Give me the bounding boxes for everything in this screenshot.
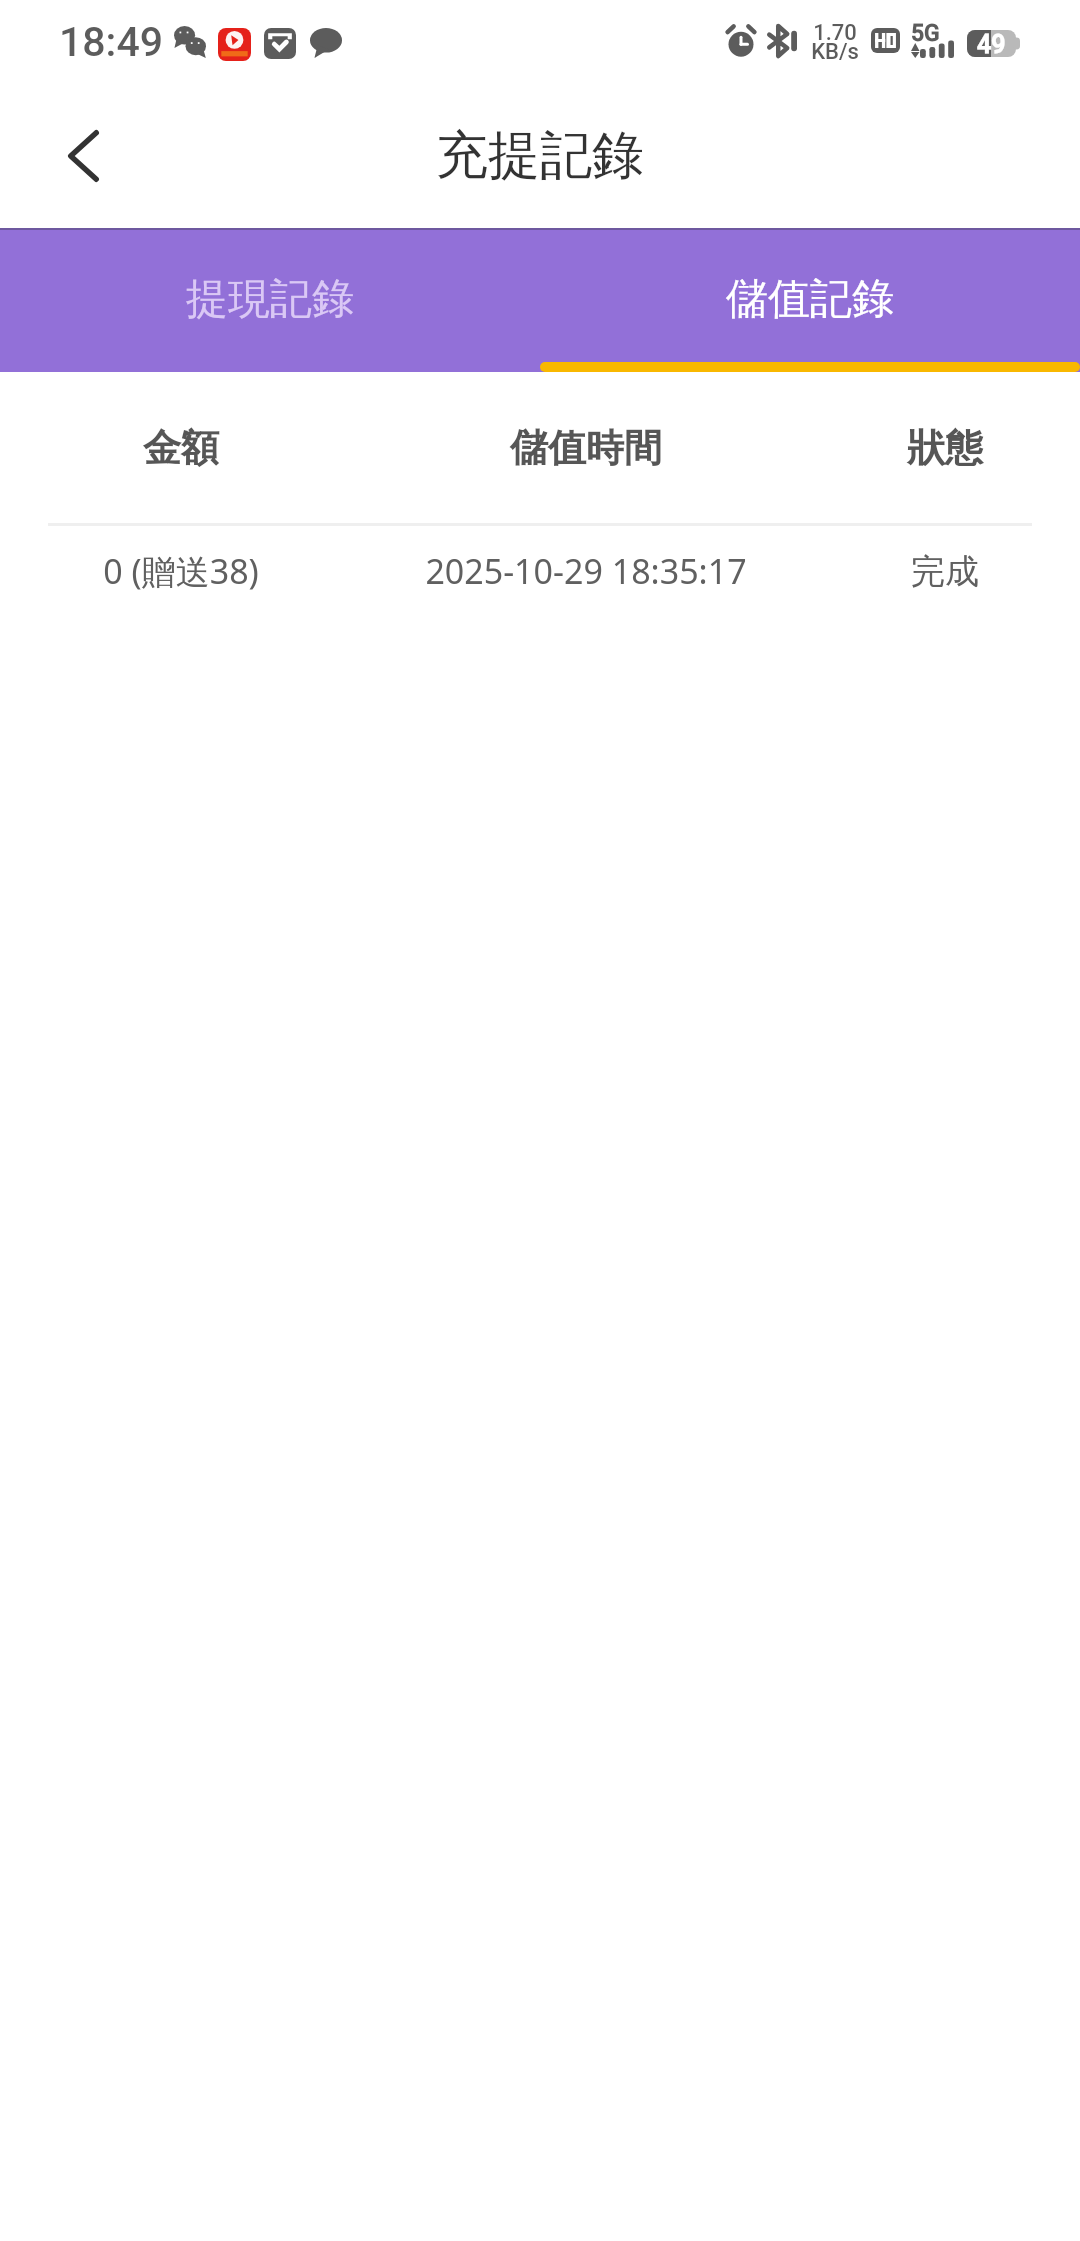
- button[interactable]: Back: [23, 96, 143, 216]
- button[interactable]: 提現記錄: [0, 228, 540, 372]
- staticText: 49: [977, 30, 1006, 57]
- staticText: 1.70 KB/s: [811, 20, 859, 64]
- button[interactable]: 儲值記錄: [540, 228, 1080, 372]
- staticText: 金額: [143, 424, 219, 472]
- staticText: 充提記錄: [436, 123, 644, 189]
- staticText: 儲值時間: [510, 424, 662, 472]
- staticText: 狀態: [907, 424, 983, 472]
- staticText: 0 (贈送38): [103, 548, 259, 594]
- staticText: 儲值記錄: [726, 273, 894, 326]
- staticText: 提現記錄: [186, 273, 354, 326]
- staticText: 完成: [911, 550, 979, 593]
- staticText: 18:49: [59, 18, 164, 66]
- button[interactable]: 0 (贈送38): [0, 526, 1080, 616]
- staticText: 5G: [911, 20, 940, 47]
- staticText: 2025-10-29 18:35:17: [425, 548, 747, 594]
